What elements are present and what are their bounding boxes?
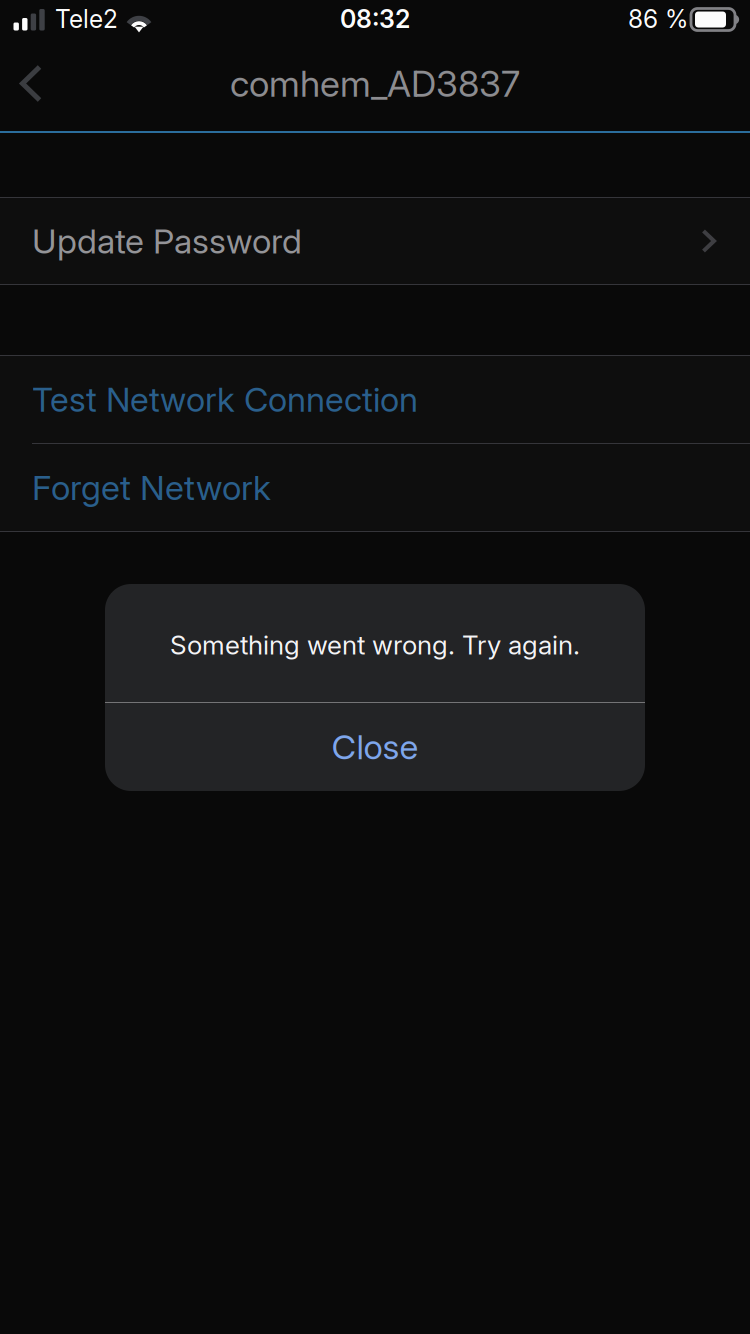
button[interactable]: Update Password (0, 198, 750, 284)
button[interactable]: Back (0, 40, 62, 126)
staticText: Close (331, 726, 418, 767)
staticText: Tele2 (55, 4, 118, 34)
button[interactable]: Test Network Connection (0, 356, 750, 443)
staticText: 86 % (628, 4, 688, 34)
button[interactable]: Forget Network (0, 444, 750, 531)
staticText: Forget Network (32, 467, 271, 508)
staticText: comhem_AD3837 (230, 62, 520, 105)
staticText: Something went wrong. Try again. (170, 629, 580, 661)
button[interactable]: Close (105, 703, 645, 791)
staticText: Update Password (32, 220, 302, 262)
staticText: Test Network Connection (32, 379, 418, 420)
staticText: 08:32 (340, 4, 410, 34)
